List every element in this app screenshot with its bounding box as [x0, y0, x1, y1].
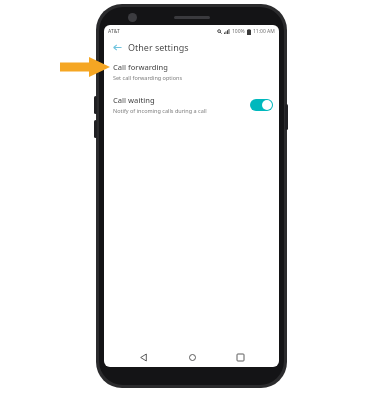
button[interactable]: Back	[134, 348, 152, 366]
staticText: 100%	[232, 28, 245, 35]
staticText: 11:00 AM	[253, 28, 275, 35]
button[interactable]: Call waiting	[104, 91, 279, 118]
button[interactable]: Back	[110, 40, 124, 54]
staticText: Call forwarding	[113, 62, 168, 72]
staticText: Call waiting	[113, 95, 155, 105]
staticText: AT&T	[108, 28, 120, 35]
staticText: Set call forwarding options	[113, 74, 183, 81]
button[interactable]: Recent apps	[231, 348, 249, 366]
button[interactable]: Home	[183, 348, 201, 366]
button[interactable]: Call forwarding	[104, 58, 279, 85]
staticText: Notify of incoming calls during a call	[113, 107, 207, 114]
button[interactable]: Call waiting toggle, on	[250, 99, 273, 111]
staticText: Other settings	[128, 41, 189, 53]
